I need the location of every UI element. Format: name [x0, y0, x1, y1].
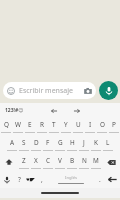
- button[interactable]: Cursor left: [48, 105, 59, 116]
- staticText: O: [100, 120, 105, 129]
- button[interactable]: B: [66, 154, 78, 171]
- staticText: V: [58, 156, 62, 165]
- button[interactable]: O: [96, 118, 108, 135]
- button[interactable]: ,: [37, 172, 46, 187]
- button[interactable]: Camera: [83, 86, 93, 96]
- button[interactable]: J: [78, 136, 90, 153]
- staticText: Z: [22, 156, 26, 165]
- staticText: K: [94, 138, 98, 147]
- staticText: W: [15, 120, 21, 129]
- staticText: U: [76, 120, 81, 129]
- button[interactable]: 123!#☺: [3, 106, 26, 115]
- staticText: R: [40, 120, 44, 129]
- button[interactable]: Change keyboard: [24, 172, 37, 187]
- staticText: N: [82, 156, 87, 165]
- button[interactable]: E: [24, 118, 36, 135]
- staticText: S: [22, 138, 26, 147]
- button[interactable]: Voice input: [0, 172, 14, 187]
- button[interactable]: Q: [0, 118, 12, 135]
- button[interactable]: S: [18, 136, 30, 153]
- button[interactable]: K: [90, 136, 102, 153]
- staticText: ?: [18, 175, 21, 184]
- staticText: M: [93, 156, 99, 165]
- button[interactable]: Y: [60, 118, 72, 135]
- staticText: Inglés: [65, 175, 78, 181]
- button[interactable]: W: [12, 118, 24, 135]
- staticText: ,: [41, 175, 43, 184]
- staticText: H: [70, 138, 75, 147]
- button[interactable]: Emoji: [3, 82, 96, 99]
- staticText: C: [46, 156, 51, 165]
- button[interactable]: R: [36, 118, 48, 135]
- staticText: A: [10, 138, 15, 147]
- button[interactable]: F: [42, 136, 54, 153]
- button[interactable]: D: [30, 136, 42, 153]
- staticText: G: [58, 138, 63, 147]
- staticText: Escribir mensaje: [19, 86, 83, 96]
- staticText: F: [46, 138, 50, 147]
- staticText: .: [99, 175, 101, 184]
- button[interactable]: I: [84, 118, 96, 135]
- button[interactable]: U: [72, 118, 84, 135]
- staticText: P: [112, 120, 116, 129]
- button[interactable]: H: [66, 136, 78, 153]
- button[interactable]: Cursor right: [71, 105, 82, 116]
- staticText: X: [34, 156, 38, 165]
- button[interactable]: V: [54, 154, 66, 171]
- staticText: Y: [64, 120, 68, 129]
- button[interactable]: Shift: [0, 154, 18, 170]
- staticText: E: [28, 120, 32, 129]
- button[interactable]: Record voice message: [99, 81, 118, 100]
- button[interactable]: C: [42, 154, 54, 171]
- staticText: Q: [4, 120, 9, 129]
- button[interactable]: L: [102, 136, 114, 153]
- staticText: L: [106, 138, 110, 147]
- button[interactable]: .: [95, 172, 104, 187]
- button[interactable]: Space: [47, 172, 94, 187]
- button[interactable]: Z: [18, 154, 30, 171]
- button[interactable]: Backspace: [102, 154, 120, 170]
- button[interactable]: Emoji: [6, 86, 16, 96]
- staticText: B: [70, 156, 75, 165]
- staticText: J: [83, 138, 85, 147]
- staticText: D: [34, 138, 39, 147]
- staticText: 123!#☺: [5, 107, 24, 114]
- button[interactable]: Enter: [104, 172, 120, 187]
- button[interactable]: M: [90, 154, 102, 171]
- button[interactable]: G: [54, 136, 66, 153]
- button[interactable]: ?: [14, 172, 24, 187]
- button[interactable]: N: [78, 154, 90, 171]
- button[interactable]: T: [48, 118, 60, 135]
- button[interactable]: P: [108, 118, 120, 135]
- staticText: I: [89, 120, 92, 129]
- button[interactable]: X: [30, 154, 42, 171]
- button[interactable]: A: [6, 136, 18, 153]
- staticText: T: [52, 120, 56, 129]
